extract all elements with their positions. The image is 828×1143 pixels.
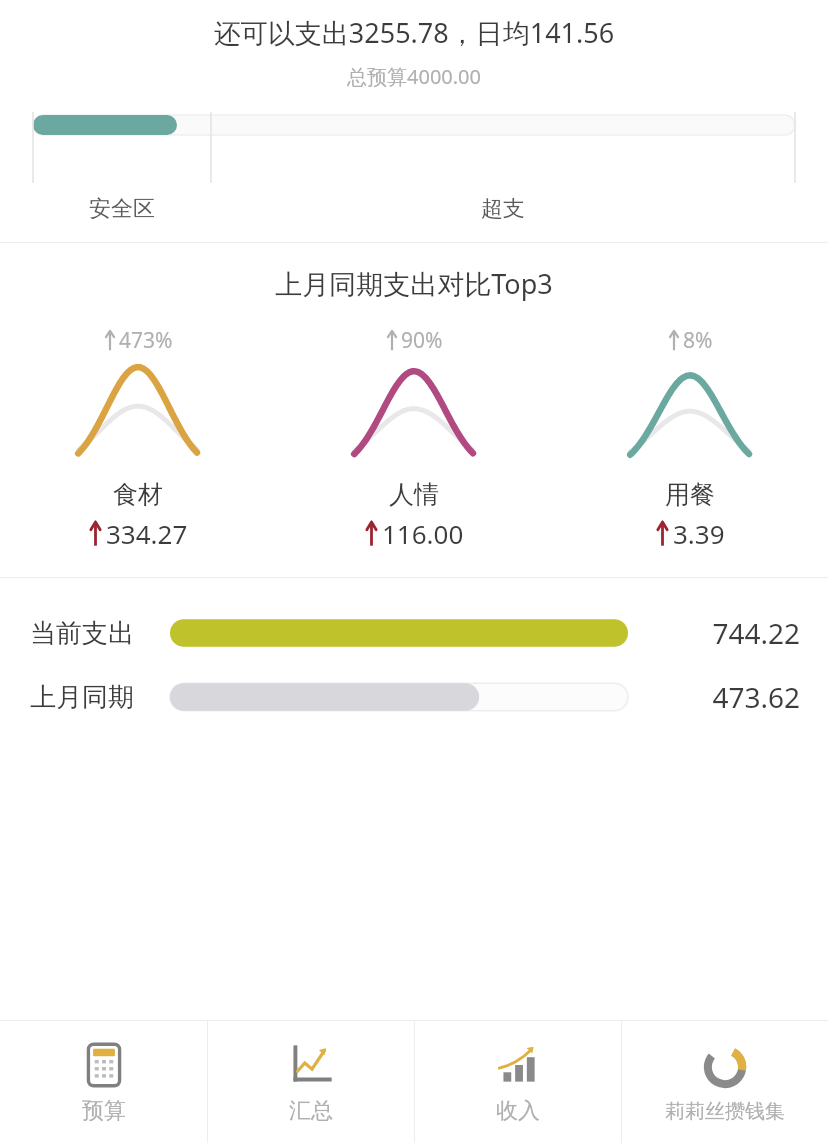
button[interactable]: 当前支出: [0, 610, 828, 656]
button[interactable]: 安全区: [33, 182, 211, 236]
staticText: 334.27: [106, 516, 188, 551]
button[interactable]: 90%: [276, 326, 552, 551]
staticText: 莉莉丝攒钱集: [665, 1099, 785, 1124]
staticText: 预算: [82, 1097, 126, 1125]
staticText: 人情: [389, 479, 439, 510]
staticText: 汇总: [289, 1097, 333, 1125]
button[interactable]: 莉莉丝攒钱集: [622, 1021, 828, 1143]
staticText: 收入: [496, 1097, 540, 1125]
staticText: 当前支出: [30, 617, 170, 650]
staticText: 安全区: [89, 195, 155, 223]
staticText: 用餐: [665, 479, 715, 510]
staticText: 上月同期支出对比Top3: [0, 265, 828, 302]
button[interactable]: 收入: [415, 1021, 621, 1143]
button[interactable]: 超支: [211, 182, 795, 236]
button[interactable]: 473%: [0, 326, 276, 551]
staticText: 3.39: [673, 516, 725, 551]
staticText: 744.22: [650, 614, 800, 652]
staticText: 473%: [119, 326, 173, 355]
button[interactable]: 汇总: [208, 1021, 414, 1143]
button[interactable]: 预算: [0, 1021, 207, 1143]
staticText: 上月同期: [30, 681, 170, 714]
staticText: 食材: [113, 479, 163, 510]
staticText: 还可以支出3255.78，日均141.56: [0, 14, 828, 51]
staticText: 总预算4000.00: [0, 63, 828, 90]
button[interactable]: 8%: [552, 326, 828, 551]
staticText: 8%: [683, 326, 713, 355]
staticText: 90%: [401, 326, 443, 355]
button[interactable]: 上月同期: [0, 674, 828, 720]
staticText: 473.62: [650, 678, 800, 716]
staticText: 超支: [481, 195, 525, 223]
staticText: 116.00: [382, 516, 464, 551]
